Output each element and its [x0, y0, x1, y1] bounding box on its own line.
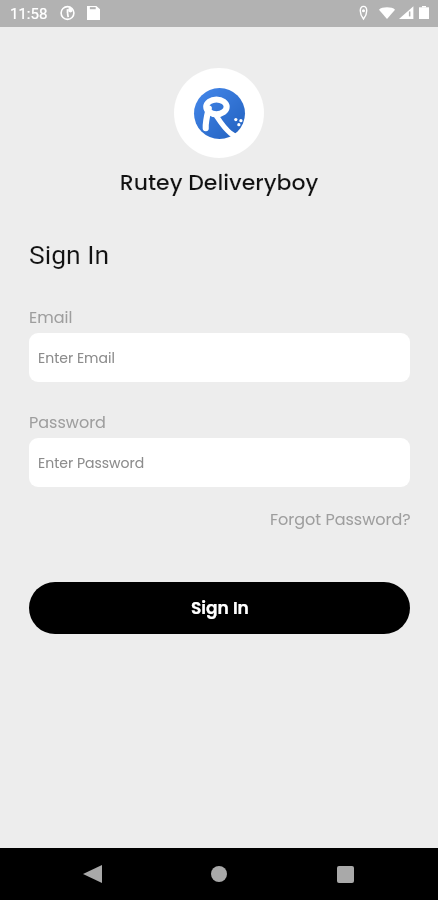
- staticText: Sign In: [29, 239, 110, 270]
- staticText: Email: [29, 306, 73, 328]
- staticText: Enter Email: [38, 348, 115, 368]
- staticText: Sign In: [191, 596, 249, 620]
- staticText: Password: [29, 411, 106, 433]
- button[interactable]: Recent apps: [321, 850, 369, 898]
- button[interactable]: Back: [68, 850, 116, 898]
- staticText: 11:58: [10, 5, 48, 23]
- button[interactable]: Home: [195, 850, 243, 898]
- staticText: Rutey Deliveryboy: [0, 167, 438, 198]
- button[interactable]: Enter Email: [29, 333, 410, 382]
- button[interactable]: Enter Password: [29, 438, 410, 487]
- staticText: Enter Password: [38, 453, 145, 473]
- button[interactable]: Forgot Password?: [262, 500, 419, 538]
- staticText: Forgot Password?: [270, 508, 411, 530]
- button[interactable]: Sign In: [29, 582, 410, 634]
